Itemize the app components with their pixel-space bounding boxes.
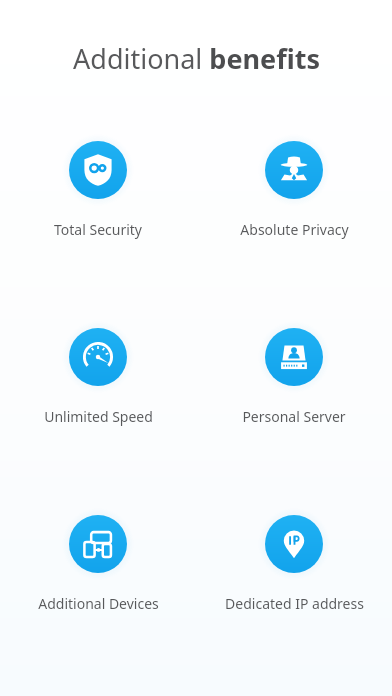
staticText: Personal Server — [242, 407, 346, 426]
staticText: Dedicated IP address — [225, 594, 364, 613]
staticText: Absolute Privacy — [240, 220, 349, 239]
staticText: Additional Devices — [38, 594, 159, 613]
staticText: Additional benefits — [73, 40, 320, 77]
button[interactable]: Personal Server — [199, 321, 389, 426]
button[interactable]: Additional Devices — [3, 508, 193, 613]
button[interactable]: Total Security — [3, 134, 193, 239]
button[interactable]: Unlimited Speed — [3, 321, 193, 426]
button[interactable]: Dedicated IP address — [199, 508, 389, 613]
staticText: Total Security — [54, 220, 142, 239]
staticText: Unlimited Speed — [44, 407, 153, 426]
button[interactable]: Absolute Privacy — [199, 134, 389, 239]
